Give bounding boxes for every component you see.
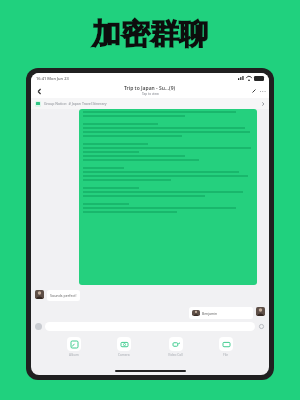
- staticText: Tap to view: [142, 92, 159, 96]
- button[interactable]: More options: [258, 87, 266, 95]
- button[interactable]: Benjamin: [189, 307, 253, 319]
- staticText: File: [223, 353, 229, 357]
- button[interactable]: Camera: [117, 337, 131, 357]
- button[interactable]: Group Notice: # Japan Travel Itinerary: [31, 98, 269, 109]
- staticText: Trip to Japan - Su...(9): [124, 85, 176, 92]
- staticText: 加密群聊: [92, 16, 208, 53]
- button[interactable]: Call: [250, 87, 258, 95]
- button[interactable]: Voice message: [35, 323, 42, 330]
- staticText: Sounds perfect!: [50, 293, 77, 298]
- button[interactable]: Sounds perfect!: [47, 290, 80, 301]
- button[interactable]: File: [219, 337, 233, 357]
- button[interactable]: Back: [34, 86, 44, 96]
- staticText: Album: [69, 353, 79, 357]
- button[interactable]: Emoji: [258, 323, 265, 330]
- button[interactable]: Video Call: [168, 337, 183, 357]
- staticText: Benjamin: [202, 311, 218, 316]
- staticText: 16:41 Mon Jun 23: [36, 76, 69, 81]
- staticText: Group Notice: # Japan Travel Itinerary: [44, 101, 107, 106]
- button[interactable]: Album: [67, 337, 81, 357]
- staticText: Video Call: [168, 353, 183, 357]
- button[interactable]: [79, 109, 257, 285]
- staticText: Camera: [118, 353, 130, 357]
